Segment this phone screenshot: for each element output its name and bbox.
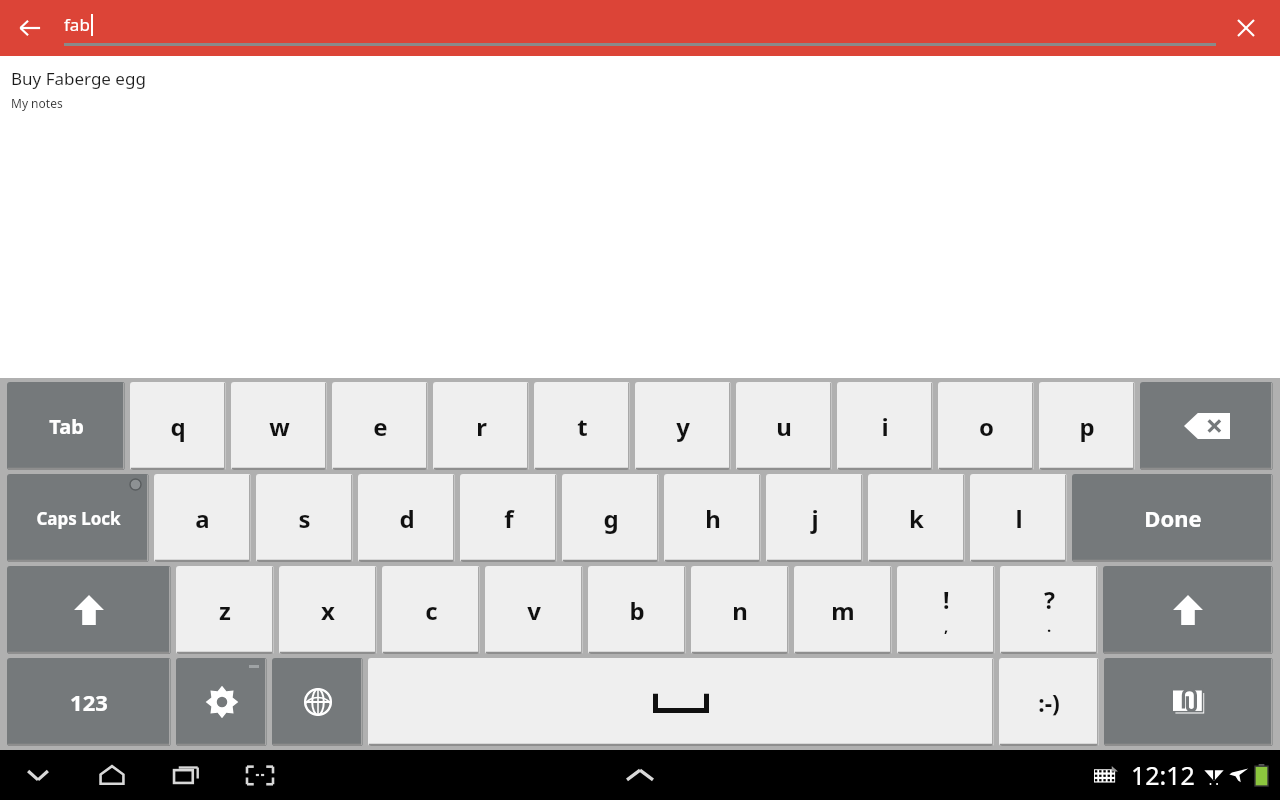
button[interactable]: Home xyxy=(88,753,136,797)
staticText: o xyxy=(979,410,994,443)
staticText: c xyxy=(425,594,438,627)
staticText: p xyxy=(1079,410,1095,443)
staticText: My notes xyxy=(11,95,63,111)
staticText: 123 xyxy=(70,687,108,717)
button[interactable]: l xyxy=(970,474,1067,562)
staticText: m xyxy=(831,594,855,627)
button[interactable]: Done xyxy=(1072,474,1273,562)
button[interactable]: d xyxy=(358,474,455,562)
staticText: w xyxy=(269,410,290,443)
staticText: l xyxy=(1015,502,1023,535)
staticText: Done xyxy=(1144,503,1202,533)
button[interactable]: t xyxy=(534,382,630,470)
button[interactable]: f xyxy=(460,474,557,562)
staticText: 12:12 xyxy=(1131,758,1195,792)
button[interactable]: Settings xyxy=(176,658,267,746)
button[interactable]: Show notifications xyxy=(612,753,668,797)
staticText: d xyxy=(399,502,415,535)
staticText: b xyxy=(629,594,645,627)
button[interactable]: u xyxy=(736,382,832,470)
button[interactable]: h xyxy=(664,474,761,562)
staticText: :-) xyxy=(1038,687,1060,718)
button[interactable]: fab xyxy=(64,0,1216,56)
staticText: h xyxy=(705,502,721,535)
button[interactable]: ? xyxy=(1000,566,1098,654)
staticText: . xyxy=(1047,616,1052,636)
button[interactable]: z xyxy=(176,566,274,654)
staticText: u xyxy=(776,410,792,443)
button[interactable]: Backspace xyxy=(1140,382,1273,470)
staticText: q xyxy=(170,410,186,443)
button[interactable]: j xyxy=(766,474,863,562)
staticText: j xyxy=(811,502,819,535)
button[interactable]: e xyxy=(332,382,428,470)
button[interactable]: Screenshot xyxy=(236,753,284,797)
button[interactable]: Hide keyboard xyxy=(14,753,62,797)
staticText: , xyxy=(944,616,949,636)
button[interactable]: Space xyxy=(368,658,994,746)
button[interactable]: i xyxy=(837,382,933,470)
button[interactable]: v xyxy=(485,566,583,654)
button[interactable]: Shift xyxy=(1103,566,1273,654)
button[interactable]: k xyxy=(868,474,965,562)
staticText: a xyxy=(195,502,210,535)
button[interactable]: a xyxy=(154,474,251,562)
staticText: z xyxy=(219,594,231,627)
staticText: s xyxy=(298,502,311,535)
button[interactable]: m xyxy=(794,566,892,654)
button[interactable]: Attachment xyxy=(1104,658,1273,746)
button[interactable]: s xyxy=(256,474,353,562)
button[interactable]: c xyxy=(382,566,480,654)
button[interactable]: n xyxy=(691,566,789,654)
staticText: Buy Faberge egg xyxy=(11,67,146,90)
button[interactable]: Buy Faberge egg xyxy=(0,56,1280,119)
button[interactable]: Recent apps xyxy=(162,753,210,797)
staticText: g xyxy=(603,502,619,535)
button[interactable]: Tab xyxy=(7,382,125,470)
button[interactable]: x xyxy=(279,566,377,654)
staticText: ? xyxy=(1044,584,1055,615)
staticText: fab xyxy=(64,13,90,36)
staticText: x xyxy=(321,594,335,627)
staticText: y xyxy=(676,410,690,443)
button[interactable]: Back xyxy=(10,8,50,48)
staticText: n xyxy=(732,594,748,627)
button[interactable]: p xyxy=(1039,382,1135,470)
staticText: e xyxy=(373,410,388,443)
staticText: Tab xyxy=(49,413,84,440)
button[interactable]: w xyxy=(231,382,327,470)
button[interactable]: 123 xyxy=(7,658,171,746)
staticText: t xyxy=(577,410,588,443)
staticText: k xyxy=(909,502,924,535)
button[interactable]: r xyxy=(433,382,529,470)
button[interactable]: Keyboard layout xyxy=(1087,755,1125,795)
button[interactable]: g xyxy=(562,474,659,562)
button[interactable]: b xyxy=(588,566,686,654)
button[interactable]: y xyxy=(635,382,731,470)
button[interactable]: ! xyxy=(897,566,995,654)
staticText: v xyxy=(527,594,541,627)
staticText: i xyxy=(881,410,889,443)
button[interactable]: Shift xyxy=(7,566,171,654)
staticText: r xyxy=(476,410,487,443)
button[interactable]: Change language xyxy=(272,658,363,746)
staticText: ! xyxy=(943,584,950,615)
button[interactable]: q xyxy=(130,382,226,470)
button[interactable]: o xyxy=(938,382,1034,470)
staticText: f xyxy=(504,502,514,535)
button[interactable]: Caps Lock xyxy=(7,474,149,562)
button[interactable]: Clear search xyxy=(1226,8,1266,48)
button[interactable]: :-) xyxy=(999,658,1099,746)
staticText: Caps Lock xyxy=(36,507,121,530)
